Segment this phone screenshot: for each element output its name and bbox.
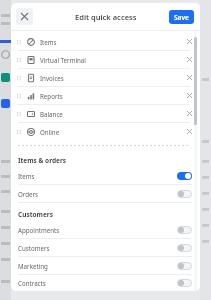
- staticText: Reports: [40, 92, 185, 100]
- other: Off: [177, 244, 192, 252]
- other: Off: [177, 279, 192, 287]
- staticText: Items: [40, 38, 185, 46]
- button[interactable]: Virtual Terminal: [11, 51, 200, 68]
- button[interactable]: Remove Items: [185, 37, 194, 46]
- button[interactable]: Customers: [11, 239, 200, 256]
- button[interactable]: Reports: [11, 87, 200, 104]
- staticText: Online: [40, 128, 185, 136]
- staticText: Edit quick access: [75, 12, 137, 22]
- other: Off: [177, 226, 192, 234]
- staticText: Contracts: [18, 279, 177, 287]
- other: Off: [177, 262, 192, 270]
- button[interactable]: Remove Invoices: [185, 73, 194, 82]
- staticText: Customers: [18, 210, 53, 219]
- staticText: Customers: [18, 244, 177, 252]
- staticText: Orders: [18, 190, 177, 198]
- button[interactable]: Invoices: [11, 69, 200, 86]
- staticText: Items & orders: [18, 156, 67, 165]
- button[interactable]: Appointments: [11, 221, 200, 238]
- staticText: Items: [18, 172, 177, 180]
- button[interactable]: Orders: [11, 185, 200, 202]
- staticText: Invoices: [40, 74, 185, 82]
- staticText: Appointments: [18, 226, 177, 234]
- button[interactable]: Remove Balance: [185, 109, 194, 118]
- staticText: Save: [174, 13, 189, 22]
- button[interactable]: Marketing: [11, 257, 200, 274]
- button[interactable]: Items: [11, 33, 200, 50]
- button[interactable]: Contracts: [11, 275, 200, 291]
- button[interactable]: Balance: [11, 105, 200, 122]
- staticText: Marketing: [18, 262, 177, 270]
- button[interactable]: Remove Online: [185, 127, 194, 136]
- button[interactable]: Remove Virtual Terminal: [185, 55, 194, 64]
- button[interactable]: Items: [11, 167, 200, 184]
- other: On: [177, 172, 192, 180]
- staticText: Virtual Terminal: [40, 56, 185, 64]
- staticText: Balance: [40, 110, 185, 118]
- button[interactable]: Save: [169, 10, 194, 24]
- button[interactable]: Remove Reports: [185, 91, 194, 100]
- button[interactable]: Online: [11, 123, 200, 140]
- other: Off: [177, 190, 192, 198]
- button[interactable]: Close: [16, 8, 33, 25]
